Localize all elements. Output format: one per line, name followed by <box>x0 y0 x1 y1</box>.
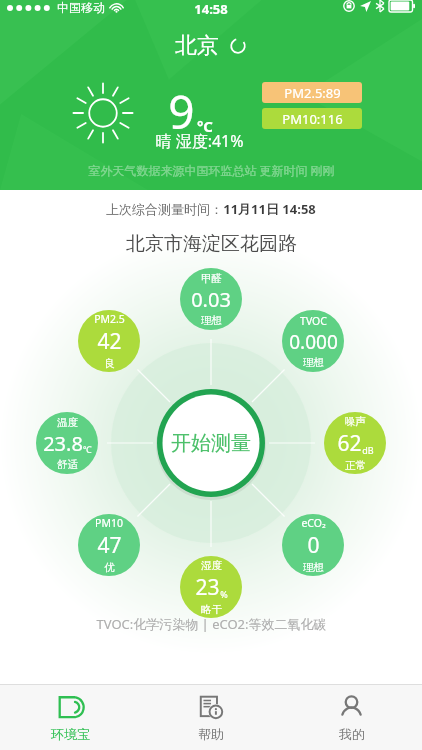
button[interactable]: 帮助 <box>140 685 281 750</box>
staticText: 我的 <box>339 726 365 742</box>
staticText: PM2.5:89 <box>284 84 341 102</box>
button[interactable]: PM2.5 <box>78 310 140 372</box>
button[interactable]: eCO₂ <box>282 514 344 576</box>
staticText: 北京市海淀区花园路 <box>126 232 297 256</box>
button[interactable]: 甲醛 <box>180 268 242 330</box>
staticText: 62 <box>337 429 362 458</box>
staticText: 理想 <box>303 561 324 574</box>
staticText: 开始测量 <box>171 431 251 456</box>
button[interactable]: 湿度 <box>180 556 242 618</box>
staticText: 优 <box>104 561 115 574</box>
staticText: PM10:116 <box>282 110 343 128</box>
staticText: TVOC <box>300 314 327 328</box>
staticText: 晴 湿度:41% <box>155 130 244 152</box>
staticText: 良 <box>104 357 115 370</box>
staticText: 42 <box>97 327 122 356</box>
staticText: 47 <box>97 531 122 560</box>
staticText: 室外天气数据来源中国环监总站 更新时间 刚刚 <box>88 162 335 178</box>
staticText: 14:58 <box>194 0 228 18</box>
button[interactable]: 温度 <box>36 412 98 474</box>
staticText: 甲醛 <box>201 272 222 285</box>
staticText: °C <box>197 116 213 136</box>
button[interactable]: 我的 <box>281 685 422 750</box>
staticText: 理想 <box>303 356 324 369</box>
staticText: PM10 <box>95 516 123 530</box>
staticText: 温度 <box>57 416 78 429</box>
staticText: 正常 <box>345 459 366 472</box>
staticText: 23.8 <box>43 430 83 457</box>
button[interactable]: PM10:116 <box>262 108 362 129</box>
staticText: 理想 <box>201 314 222 327</box>
staticText: 中国移动 <box>57 0 105 15</box>
staticText: 0 <box>307 531 320 560</box>
staticText: TVOC:化学污染物 | eCO2:等效二氧化碳 <box>96 615 327 633</box>
button[interactable]: 开始测量 <box>155 387 267 499</box>
staticText: 9 <box>168 80 195 143</box>
staticText: dB <box>362 444 374 456</box>
staticText: 湿度 <box>201 559 222 572</box>
staticText: 北京 <box>175 32 219 60</box>
button[interactable]: PM10 <box>78 514 140 576</box>
staticText: 23 <box>195 573 220 602</box>
button[interactable]: Refresh <box>228 36 248 56</box>
button[interactable]: TVOC <box>282 310 344 372</box>
staticText: 上次综合测量时间： <box>106 201 223 217</box>
staticText: 11月11日 14:58 <box>223 200 316 218</box>
button[interactable]: 环境宝 <box>0 685 140 750</box>
staticText: 略干 <box>201 603 222 616</box>
staticText: 0.000 <box>289 329 338 355</box>
staticText: 帮助 <box>198 726 224 742</box>
button[interactable]: 噪声 <box>324 412 386 474</box>
staticText: 0.03 <box>191 286 231 313</box>
staticText: 噪声 <box>345 415 366 428</box>
staticText: % <box>220 588 228 600</box>
staticText: PM2.5 <box>94 312 125 326</box>
button[interactable]: PM2.5:89 <box>262 82 362 103</box>
staticText: ℃ <box>83 443 92 455</box>
staticText: 舒适 <box>57 458 78 471</box>
staticText: 环境宝 <box>51 726 90 742</box>
staticText: eCO₂ <box>301 516 326 530</box>
